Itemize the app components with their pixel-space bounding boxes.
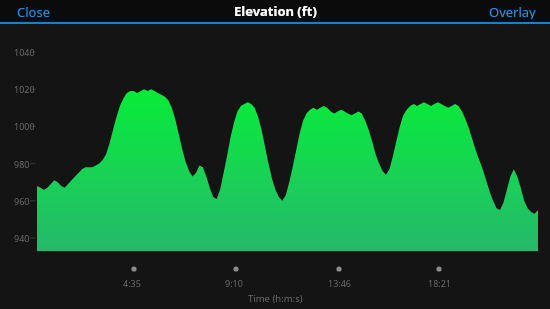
staticText: 980 bbox=[14, 158, 30, 170]
staticText: 1020 bbox=[14, 83, 35, 95]
staticText: 9:10 bbox=[225, 277, 243, 289]
staticText: Overlay bbox=[489, 3, 536, 19]
staticText: 960 bbox=[14, 195, 30, 207]
staticText: 1000 bbox=[14, 120, 35, 132]
staticText: 13:46 bbox=[328, 277, 352, 289]
button[interactable]: Overlay bbox=[477, 0, 550, 22]
staticText: Elevation (ft) bbox=[234, 2, 317, 20]
staticText: 1040 bbox=[14, 46, 35, 58]
button[interactable]: Close bbox=[0, 0, 62, 22]
staticText: Time (h:m:s) bbox=[248, 292, 303, 305]
staticText: Close bbox=[17, 3, 50, 19]
staticText: 940 bbox=[14, 232, 30, 244]
staticText: 18:21 bbox=[428, 277, 452, 289]
staticText: 4:35 bbox=[123, 277, 141, 289]
